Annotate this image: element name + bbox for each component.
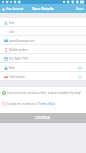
staticText: Card number (9, 75, 26, 79)
staticText: CONTINUE (35, 116, 51, 120)
button[interactable]: Mobile number (0, 45, 86, 54)
button[interactable]: DD / MM / YYYY (0, 54, 86, 63)
button[interactable]: Done (74, 5, 86, 13)
button[interactable]: I accept the conditions of (0, 98, 86, 109)
staticText: I want to receive exclusive offers, news… (7, 91, 81, 95)
staticText: Last (9, 30, 14, 34)
button[interactable]: First (0, 18, 86, 27)
button[interactable]: Last (0, 27, 86, 36)
button[interactable]: Terms of Use (39, 102, 55, 106)
staticText: Your Account (6, 7, 24, 11)
button[interactable]: Card number (0, 72, 86, 81)
button[interactable]: CONTINUE (0, 113, 86, 123)
staticText: Done (76, 7, 84, 11)
button[interactable]: Your Account (0, 5, 25, 13)
button[interactable]: name@example.com (0, 36, 86, 45)
staticText: Mobile number (9, 48, 28, 52)
staticText: Male (9, 66, 15, 70)
staticText: I accept the conditions of (7, 102, 39, 106)
staticText: DD / MM / YYYY (9, 57, 28, 61)
staticText: Your Details (32, 6, 54, 11)
button[interactable]: Male (0, 63, 86, 72)
staticText: First (9, 21, 15, 25)
staticText: name@example.com (9, 39, 35, 43)
button[interactable]: I want to receive exclusive offers, news… (0, 87, 86, 98)
